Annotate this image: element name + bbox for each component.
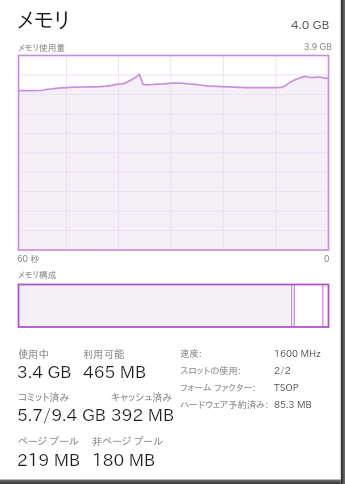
staticText: 392 MB bbox=[111, 406, 175, 423]
staticText: キャッシュ済み bbox=[111, 392, 173, 402]
staticText: 4.0 GB bbox=[291, 18, 330, 30]
staticText: 180 MB bbox=[92, 451, 156, 468]
staticText: ハードウェア予約済み: bbox=[180, 400, 269, 409]
staticText: フォーム ファクター: bbox=[180, 383, 256, 392]
staticText: スロットの使用: bbox=[180, 366, 241, 375]
staticText: 465 MB bbox=[83, 363, 147, 380]
staticText: 3.9 GB bbox=[304, 42, 332, 51]
staticText: 利用可能 bbox=[83, 349, 125, 359]
staticText: 219 MB bbox=[17, 451, 81, 468]
staticText: 1600 MHz bbox=[274, 349, 321, 359]
staticText: 2/2 bbox=[274, 366, 291, 376]
staticText: メモリ使用量 bbox=[18, 43, 66, 52]
staticText: 0 bbox=[324, 254, 330, 263]
staticText: 85.3 MB bbox=[274, 400, 312, 410]
staticText: 非ページ プール bbox=[92, 436, 164, 446]
staticText: 60 秒 bbox=[17, 254, 39, 263]
staticText: 速度: bbox=[180, 349, 202, 358]
staticText: コミット済み bbox=[18, 392, 70, 402]
staticText: 3.4 GB bbox=[17, 363, 72, 380]
staticText: ページ プール bbox=[18, 436, 79, 446]
staticText: 使用中 bbox=[18, 349, 49, 359]
staticText: メモリ bbox=[17, 9, 71, 31]
staticText: 5.7/9.4 GB bbox=[17, 406, 106, 423]
staticText: TSOP bbox=[274, 383, 299, 393]
staticText: メモリ構成 bbox=[18, 270, 57, 279]
